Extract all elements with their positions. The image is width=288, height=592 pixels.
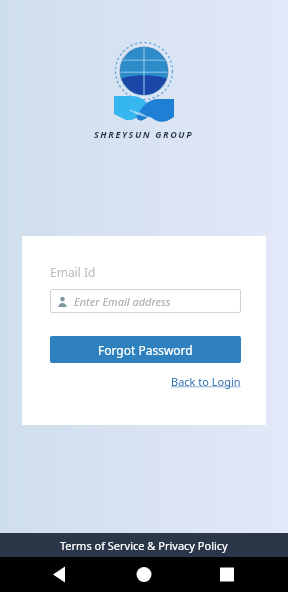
button[interactable]: Enter Email address: [50, 289, 241, 313]
staticText: Forgot Password: [98, 342, 193, 358]
staticText: SHREYSUN GROUP: [94, 128, 194, 140]
staticText: Email Id: [50, 264, 96, 280]
staticText: Terms of Service & Privacy Policy: [60, 538, 228, 553]
staticText: Enter Email address: [74, 294, 171, 309]
button[interactable]: Back to Login: [171, 374, 241, 389]
button[interactable]: Terms of Service & Privacy Policy: [0, 533, 288, 557]
button[interactable]: Forgot Password: [50, 336, 241, 363]
